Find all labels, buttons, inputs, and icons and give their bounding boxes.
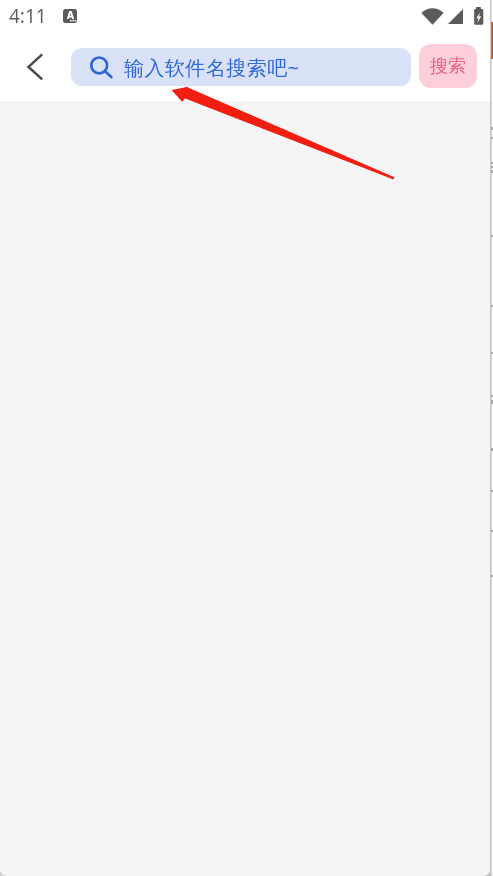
staticText: 搜索	[430, 55, 466, 78]
staticText: 输入软件名搜索吧~	[124, 54, 300, 81]
button[interactable]: 输入软件名搜索吧~	[71, 48, 411, 86]
button[interactable]: 搜索	[419, 44, 477, 88]
button[interactable]: Back	[14, 41, 56, 93]
staticText: A	[67, 9, 74, 22]
staticText: 4:11	[9, 3, 47, 29]
